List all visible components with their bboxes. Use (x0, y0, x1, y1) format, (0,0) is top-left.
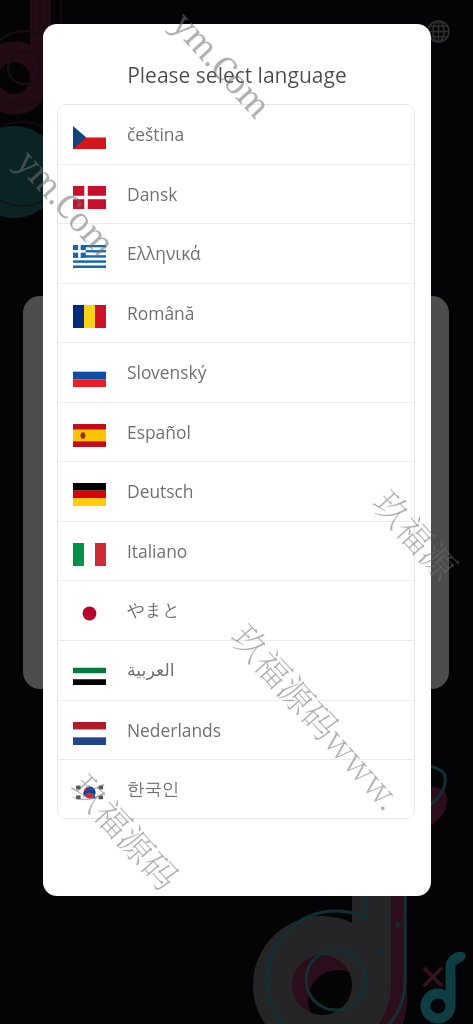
button[interactable]: Română (57, 283, 415, 343)
staticText: العربية (127, 660, 175, 680)
staticText: Español (127, 420, 191, 444)
staticText: Slovenský (127, 360, 207, 384)
button[interactable]: Deutsch (57, 461, 415, 521)
staticText: Nederlands (127, 718, 222, 742)
staticText: Italiano (127, 539, 188, 563)
button[interactable]: čeština (57, 104, 415, 164)
button[interactable]: Italiano (57, 521, 415, 581)
button[interactable]: Dansk (57, 164, 415, 224)
button[interactable]: العربية (57, 640, 415, 700)
button[interactable]: Language (426, 19, 451, 44)
button[interactable]: Español (57, 402, 415, 462)
staticText: Română (127, 301, 195, 325)
staticText: Ελληνικά (127, 241, 201, 265)
button[interactable]: Nederlands (57, 700, 415, 760)
button[interactable]: Slovenský (57, 342, 415, 402)
staticText: Please select language (43, 61, 431, 90)
button[interactable]: Ελληνικά (57, 223, 415, 283)
staticText: やまと (127, 599, 181, 621)
staticText: čeština (127, 122, 185, 146)
staticText: Dansk (127, 182, 178, 206)
staticText: Deutsch (127, 479, 194, 503)
button[interactable]: 한국인 (57, 759, 415, 819)
staticText: 한국인 (127, 778, 180, 800)
button[interactable]: やまと (57, 580, 415, 640)
